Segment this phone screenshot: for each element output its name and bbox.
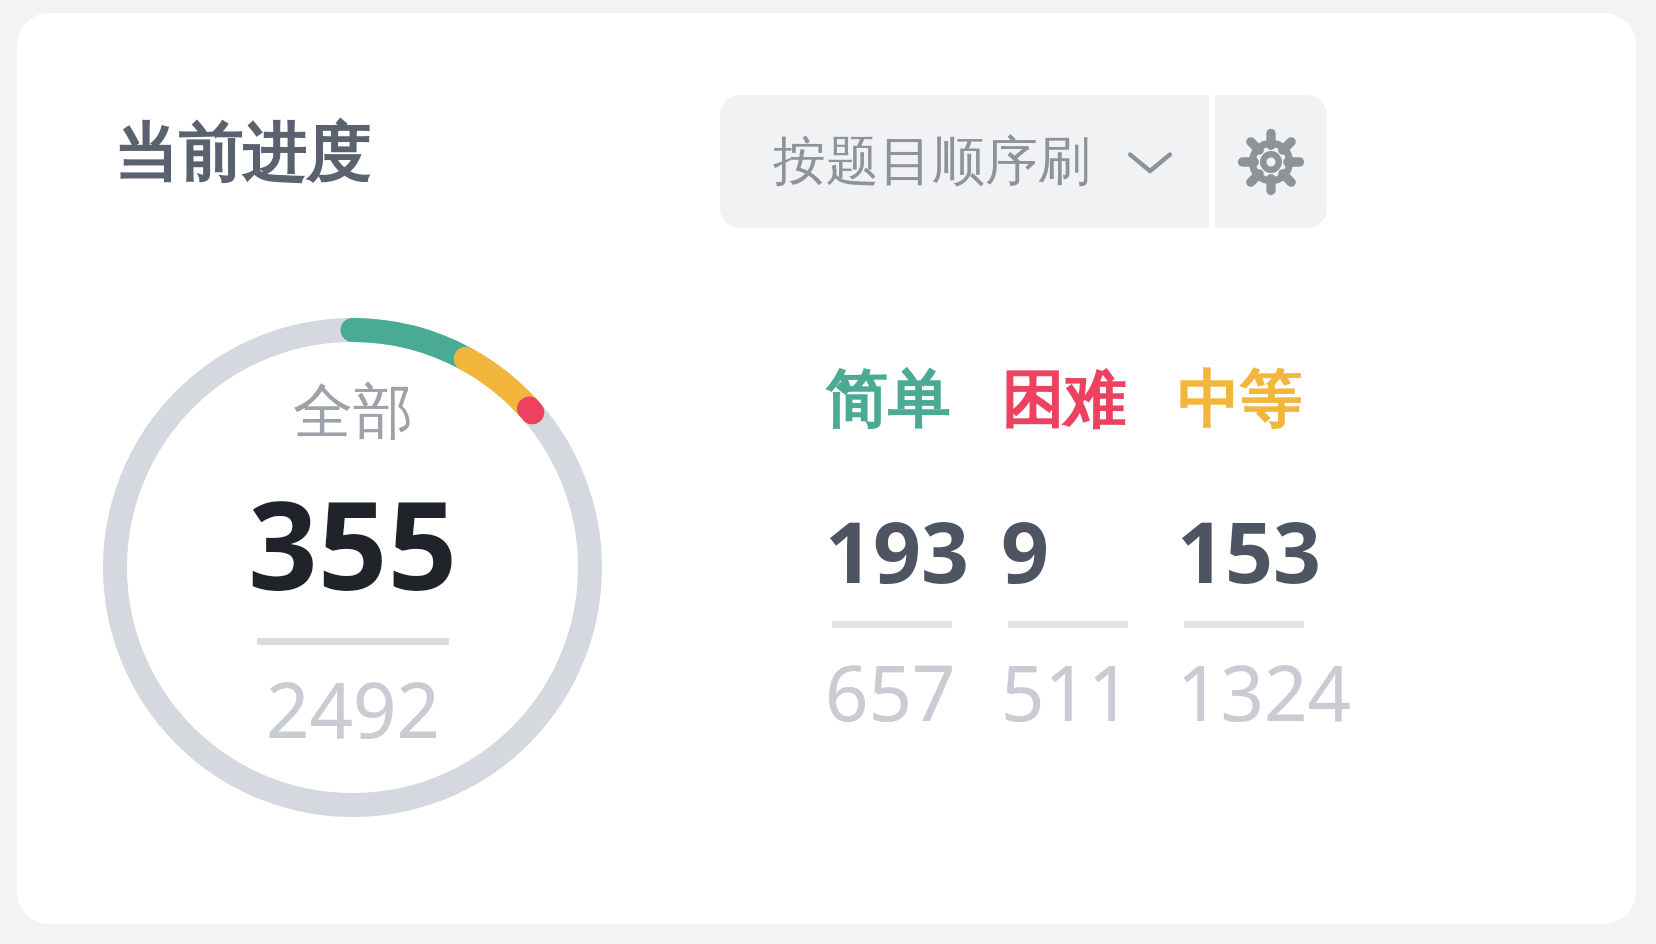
staticText: 153 bbox=[1177, 493, 1322, 607]
button[interactable]: 简单 bbox=[825, 361, 1001, 744]
button[interactable]: 困难 bbox=[1001, 361, 1177, 744]
staticText: 9 bbox=[1001, 493, 1050, 607]
staticText: 全部 bbox=[293, 374, 413, 450]
staticText: 按题目顺序刷 bbox=[773, 128, 1091, 195]
staticText: 中等 bbox=[1177, 361, 1301, 439]
staticText: 简单 bbox=[825, 361, 949, 439]
button[interactable]: 按题目顺序刷 bbox=[720, 95, 1209, 228]
staticText: 657 bbox=[825, 640, 956, 744]
staticText: 当前进度 bbox=[114, 113, 370, 194]
staticText: 1324 bbox=[1177, 640, 1351, 744]
button[interactable]: Settings bbox=[1215, 95, 1327, 228]
staticText: 困难 bbox=[1001, 361, 1125, 439]
staticText: 355 bbox=[248, 460, 458, 626]
staticText: 193 bbox=[825, 493, 970, 607]
button[interactable]: 中等 bbox=[1177, 361, 1353, 744]
staticText: 511 bbox=[1001, 640, 1132, 744]
staticText: 2492 bbox=[266, 657, 440, 761]
